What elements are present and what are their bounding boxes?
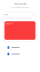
staticText: Upgrade xyxy=(6,23,13,25)
staticText: $12 xyxy=(32,14,35,16)
staticText: Everything in Free plus advanced tools xyxy=(5,17,32,19)
staticText: Cancel anytime, no questions xyxy=(10,7,29,8)
staticText: Pro xyxy=(5,14,8,16)
staticText: Choose your plan xyxy=(13,3,26,5)
